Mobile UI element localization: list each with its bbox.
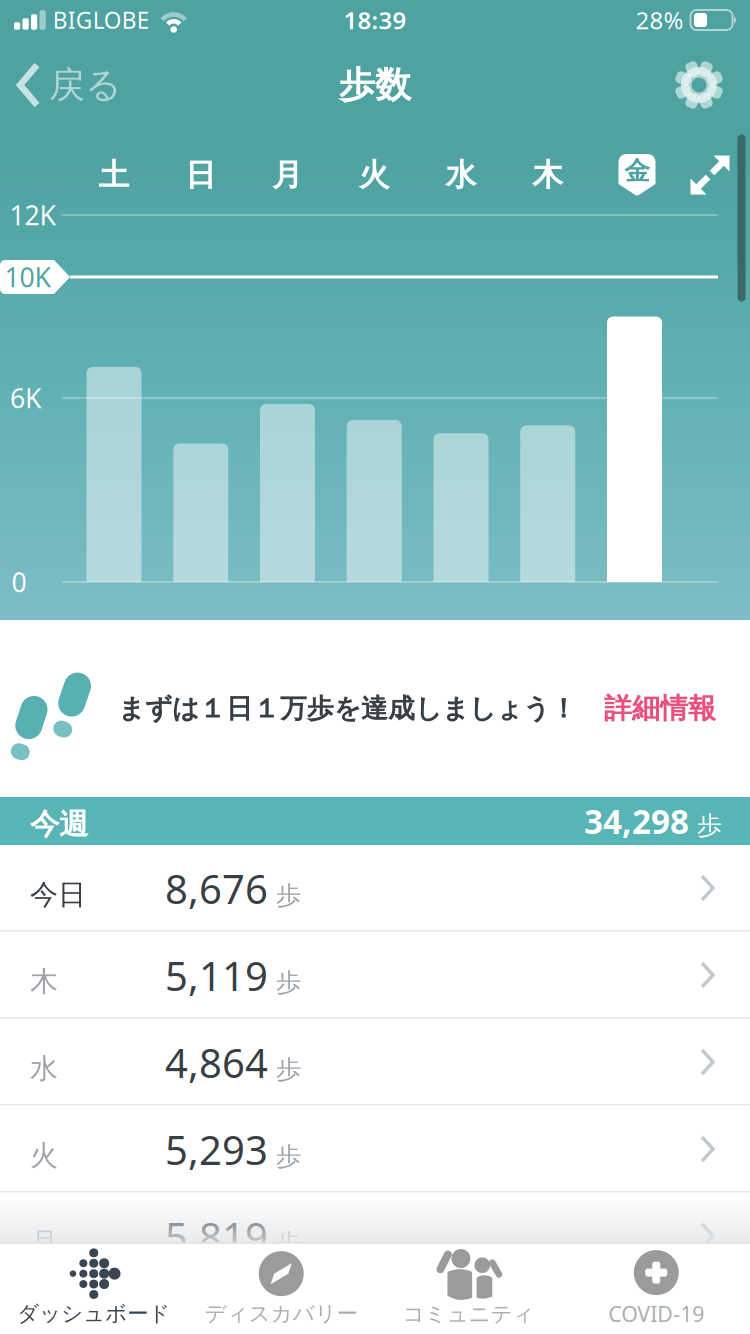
staticText: 歩	[268, 1228, 301, 1259]
staticText: 歩	[689, 810, 722, 841]
button[interactable]: 水	[0, 1019, 750, 1106]
button[interactable]: 火	[0, 1106, 750, 1193]
staticText: 今日	[30, 877, 86, 912]
button[interactable]: 詳細情報	[604, 691, 716, 726]
button[interactable]: 火	[359, 156, 390, 194]
button[interactable]: 金	[618, 154, 655, 196]
staticText: 戻る	[49, 63, 122, 107]
staticText: 木	[30, 964, 58, 999]
staticText: ディスカバリー	[205, 1301, 358, 1327]
button[interactable]: コミュニティ	[375, 1250, 562, 1327]
staticText: 5,293	[165, 1123, 268, 1176]
staticText: 10K	[4, 259, 51, 295]
staticText: 水	[30, 1051, 58, 1086]
button[interactable]: 木	[532, 156, 563, 194]
staticText: ダッシュボード	[17, 1301, 170, 1327]
staticText: 今週	[30, 806, 88, 842]
button[interactable]: 戻る	[16, 62, 122, 108]
staticText: 歩	[268, 880, 301, 911]
staticText: 火	[359, 156, 390, 194]
staticText: 火	[30, 1138, 58, 1173]
staticText: 月	[272, 156, 303, 194]
staticText: 5,119	[165, 949, 268, 1002]
staticText: 金	[624, 155, 649, 186]
staticText: 土	[98, 156, 129, 194]
staticText: 歩	[268, 1054, 301, 1085]
staticText: コミュニティ	[403, 1301, 535, 1327]
staticText: 6K	[10, 380, 42, 416]
staticText: 5,819	[165, 1210, 268, 1263]
staticText: 0	[11, 564, 26, 600]
button[interactable]: ダッシュボード	[0, 1251, 187, 1327]
staticText: COVID-19	[608, 1300, 704, 1328]
button[interactable]: 土	[98, 156, 129, 194]
staticText: BIGLOBE	[53, 5, 150, 35]
staticText: 8,676	[165, 862, 268, 915]
staticText: 歩数	[339, 63, 411, 107]
staticText: 28%	[635, 4, 683, 36]
staticText: 月	[30, 1225, 58, 1260]
staticText: 水	[445, 156, 476, 194]
button[interactable]: COVID-19	[562, 1250, 750, 1328]
staticText: 12K	[9, 197, 56, 233]
staticText: まずは１日１万歩を達成しましょう！	[118, 692, 577, 725]
button[interactable]: ディスカバリー	[187, 1251, 375, 1327]
staticText: 34,298	[584, 799, 689, 843]
staticText: 木	[532, 156, 563, 194]
staticText: 日	[185, 156, 216, 194]
button[interactable]: 今日	[0, 845, 750, 932]
button[interactable]: 月	[0, 1193, 750, 1280]
button[interactable]: 月	[272, 156, 303, 194]
staticText: 歩	[268, 1141, 301, 1172]
staticText: 18:39	[343, 4, 406, 36]
staticText: 歩	[268, 967, 301, 998]
staticText: 詳細情報	[604, 691, 716, 726]
staticText: 4,864	[165, 1036, 268, 1089]
button[interactable]: 木	[0, 932, 750, 1019]
button[interactable]: 水	[445, 156, 476, 194]
button[interactable]	[690, 155, 730, 195]
button[interactable]	[674, 60, 724, 110]
button[interactable]: 日	[185, 156, 216, 194]
